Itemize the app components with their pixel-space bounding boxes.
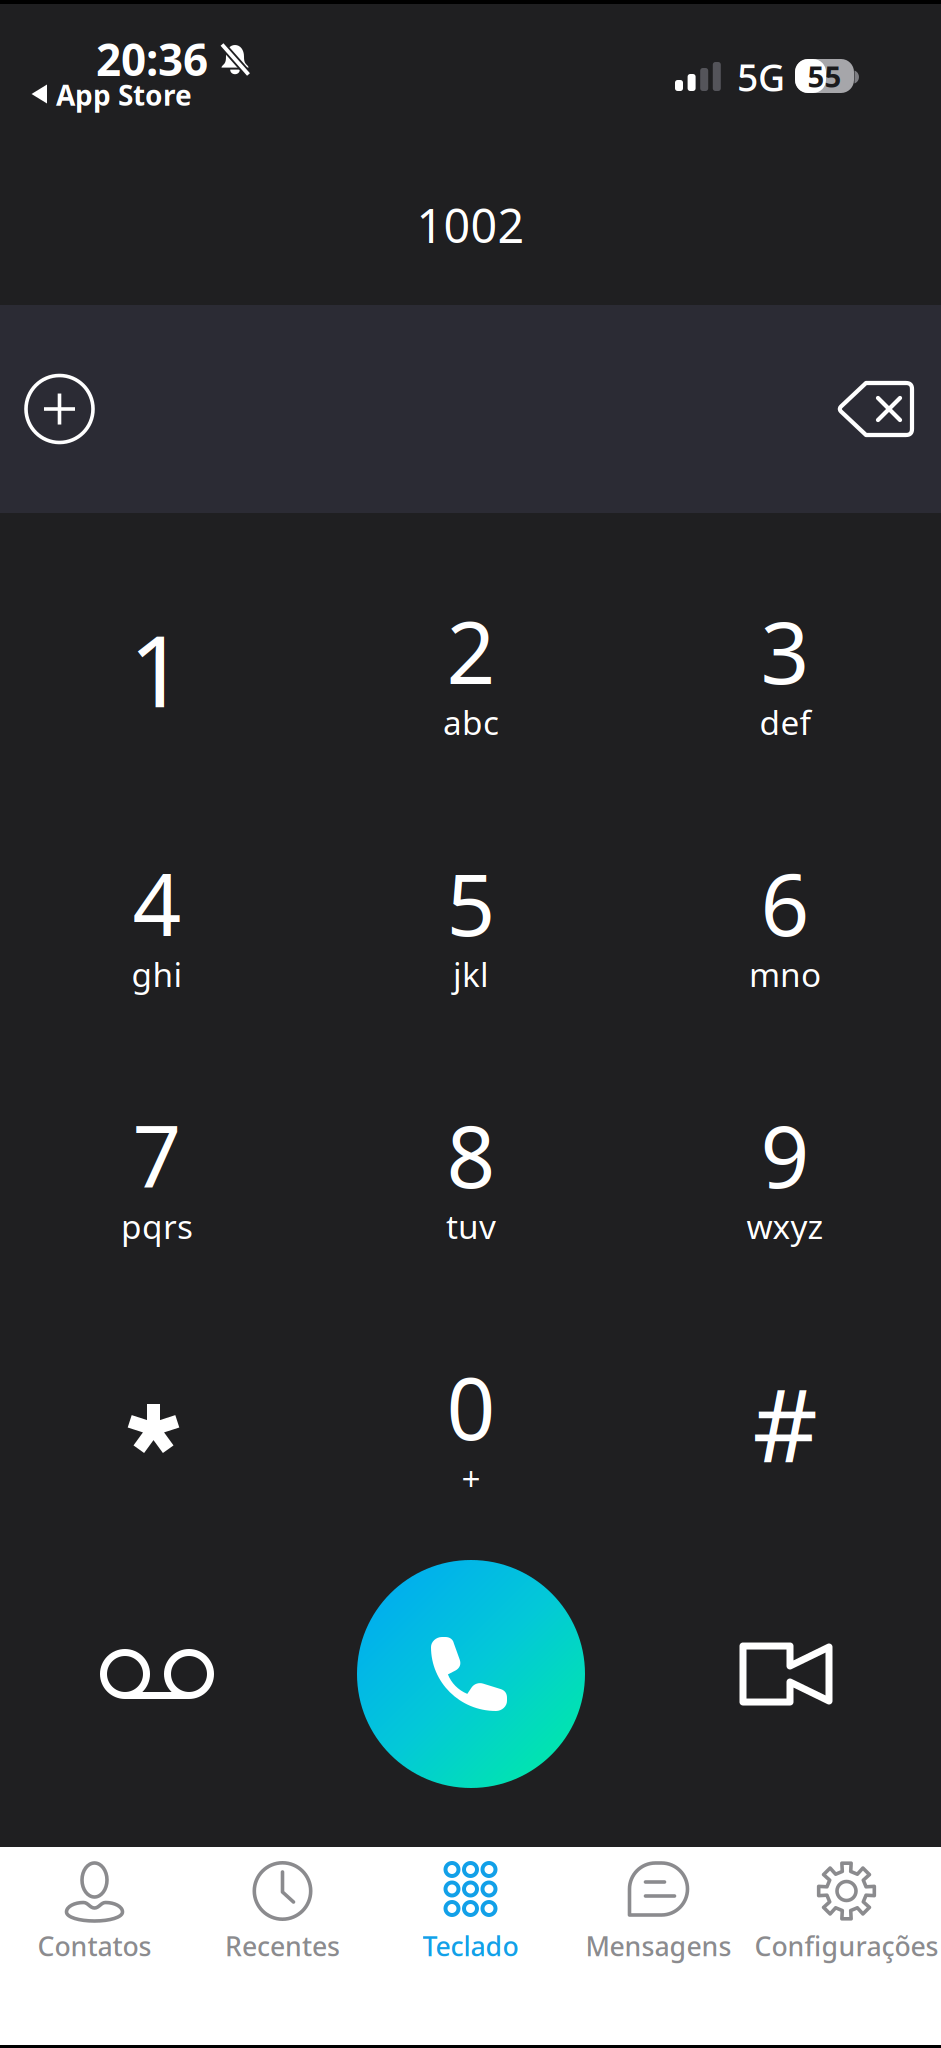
staticText: 5G	[737, 52, 785, 102]
staticText: pqrs	[121, 1204, 193, 1248]
button[interactable]: 4	[0, 858, 314, 1008]
staticText: 1002	[416, 194, 524, 256]
staticText: Contatos	[37, 1928, 151, 1964]
staticText: 20:36	[96, 30, 208, 88]
staticText: mno	[749, 952, 821, 996]
staticText: 8	[446, 1098, 495, 1212]
staticText: jkl	[453, 952, 489, 996]
button[interactable]: 0	[314, 1362, 628, 1512]
staticText: 4	[132, 846, 181, 960]
staticText: 3	[760, 594, 809, 708]
button[interactable]: 1	[0, 606, 314, 756]
button[interactable]: Mensagens	[564, 1855, 752, 1971]
button[interactable]: 8	[314, 1110, 628, 1260]
button[interactable]: Delete	[813, 349, 941, 469]
staticText: #	[752, 1356, 817, 1490]
button[interactable]: 5	[314, 858, 628, 1008]
staticText: Teclado	[422, 1928, 518, 1964]
button[interactable]: Contatos	[0, 1855, 188, 1971]
staticText: 6	[760, 846, 809, 960]
button[interactable]: Voicemail	[77, 1614, 237, 1734]
button[interactable]: Teclado	[376, 1855, 564, 1971]
button[interactable]: 7	[0, 1110, 314, 1260]
staticText: Recentes	[225, 1928, 340, 1964]
button[interactable]: #	[628, 1362, 941, 1512]
button[interactable]: 3	[628, 606, 941, 756]
button[interactable]: Configurações	[752, 1855, 940, 1971]
button[interactable]: Call	[357, 1560, 585, 1788]
staticText: +	[461, 1456, 480, 1500]
staticText: def	[759, 700, 810, 744]
staticText: 5	[446, 846, 495, 960]
staticText: abc	[443, 700, 499, 744]
button[interactable]: 6	[628, 858, 941, 1008]
staticText: wxyz	[746, 1204, 823, 1248]
button[interactable]: Recentes	[188, 1855, 376, 1971]
button[interactable]: 2	[314, 606, 628, 756]
staticText: Configurações	[754, 1928, 938, 1964]
staticText: Mensagens	[585, 1928, 731, 1964]
staticText: 2	[446, 594, 495, 708]
staticText: 55	[807, 56, 841, 95]
staticText: ghi	[131, 952, 182, 996]
button[interactable]: FaceTime	[705, 1614, 865, 1734]
button[interactable]: Star	[0, 1362, 314, 1512]
staticText: 9	[760, 1098, 809, 1212]
button[interactable]: Add number	[0, 349, 119, 469]
staticText: 7	[132, 1098, 181, 1212]
staticText: 1	[129, 603, 185, 734]
staticText: tuv	[446, 1204, 496, 1248]
staticText: App Store	[56, 76, 192, 114]
button[interactable]: 9	[628, 1110, 941, 1260]
staticText: 0	[446, 1350, 495, 1464]
